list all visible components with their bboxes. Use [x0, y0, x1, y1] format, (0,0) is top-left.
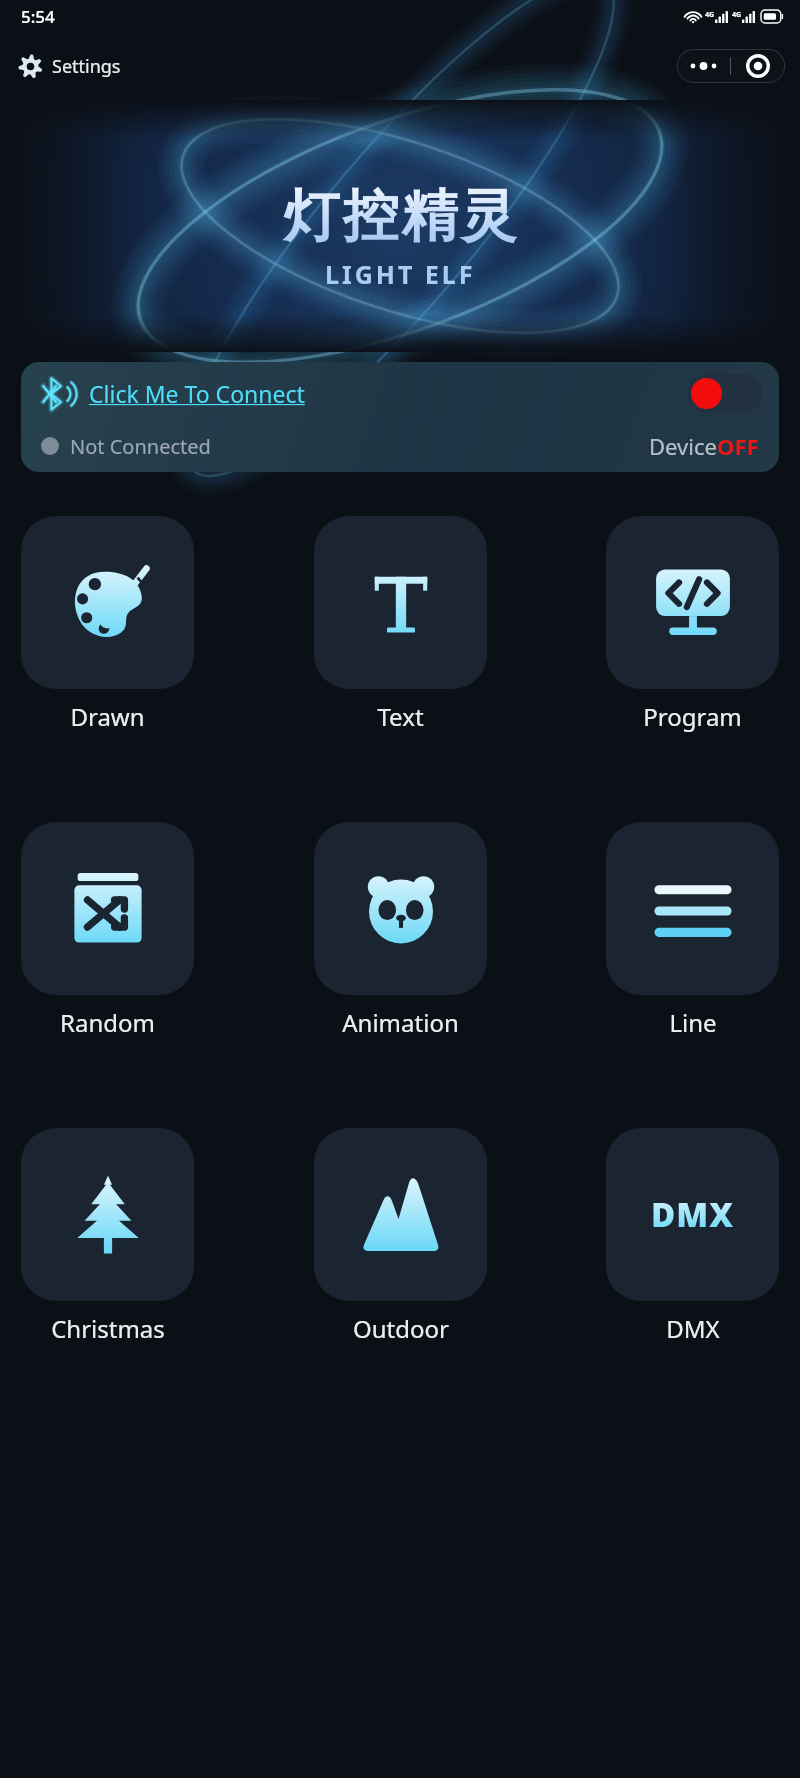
staticText: 5:54 — [21, 5, 55, 28]
staticText: Click Me To Connect — [89, 378, 305, 409]
staticText: Animation — [342, 1006, 459, 1039]
button[interactable]: Outdoor — [314, 1128, 487, 1345]
button[interactable]: More options — [677, 49, 730, 83]
staticText: OFF — [717, 431, 759, 461]
staticText: Christmas — [51, 1312, 165, 1345]
staticText: DMX — [666, 1312, 720, 1345]
button[interactable]: Drawn — [21, 516, 194, 733]
button[interactable]: DMX — [606, 1128, 779, 1345]
staticText: Random — [60, 1006, 155, 1039]
button[interactable]: Record — [731, 49, 785, 83]
staticText: Not Connected — [70, 433, 211, 460]
staticText: Drawn — [70, 700, 145, 733]
staticText: Settings — [52, 54, 121, 79]
staticText: Program — [643, 700, 742, 733]
button[interactable]: Line — [606, 822, 779, 1039]
staticText: Outdoor — [353, 1312, 449, 1345]
staticText: 4G — [705, 10, 715, 20]
button[interactable]: Random — [21, 822, 194, 1039]
staticText: DMX — [651, 1192, 734, 1237]
button[interactable]: Click Me To Connect — [21, 362, 779, 472]
staticText: Text — [377, 700, 424, 733]
staticText: 4G — [732, 10, 742, 20]
staticText: Device — [649, 431, 717, 461]
button[interactable]: Animation — [314, 822, 487, 1039]
button[interactable]: Settings — [14, 49, 125, 84]
staticText: Line — [669, 1006, 717, 1039]
staticText: LIGHT ELF — [325, 257, 476, 291]
button[interactable]: Text — [314, 516, 487, 733]
button[interactable]: Device power toggle — [687, 374, 763, 413]
button[interactable]: Christmas — [21, 1128, 194, 1345]
button[interactable]: Program — [606, 516, 779, 733]
staticText: 灯控精灵 — [282, 181, 518, 252]
